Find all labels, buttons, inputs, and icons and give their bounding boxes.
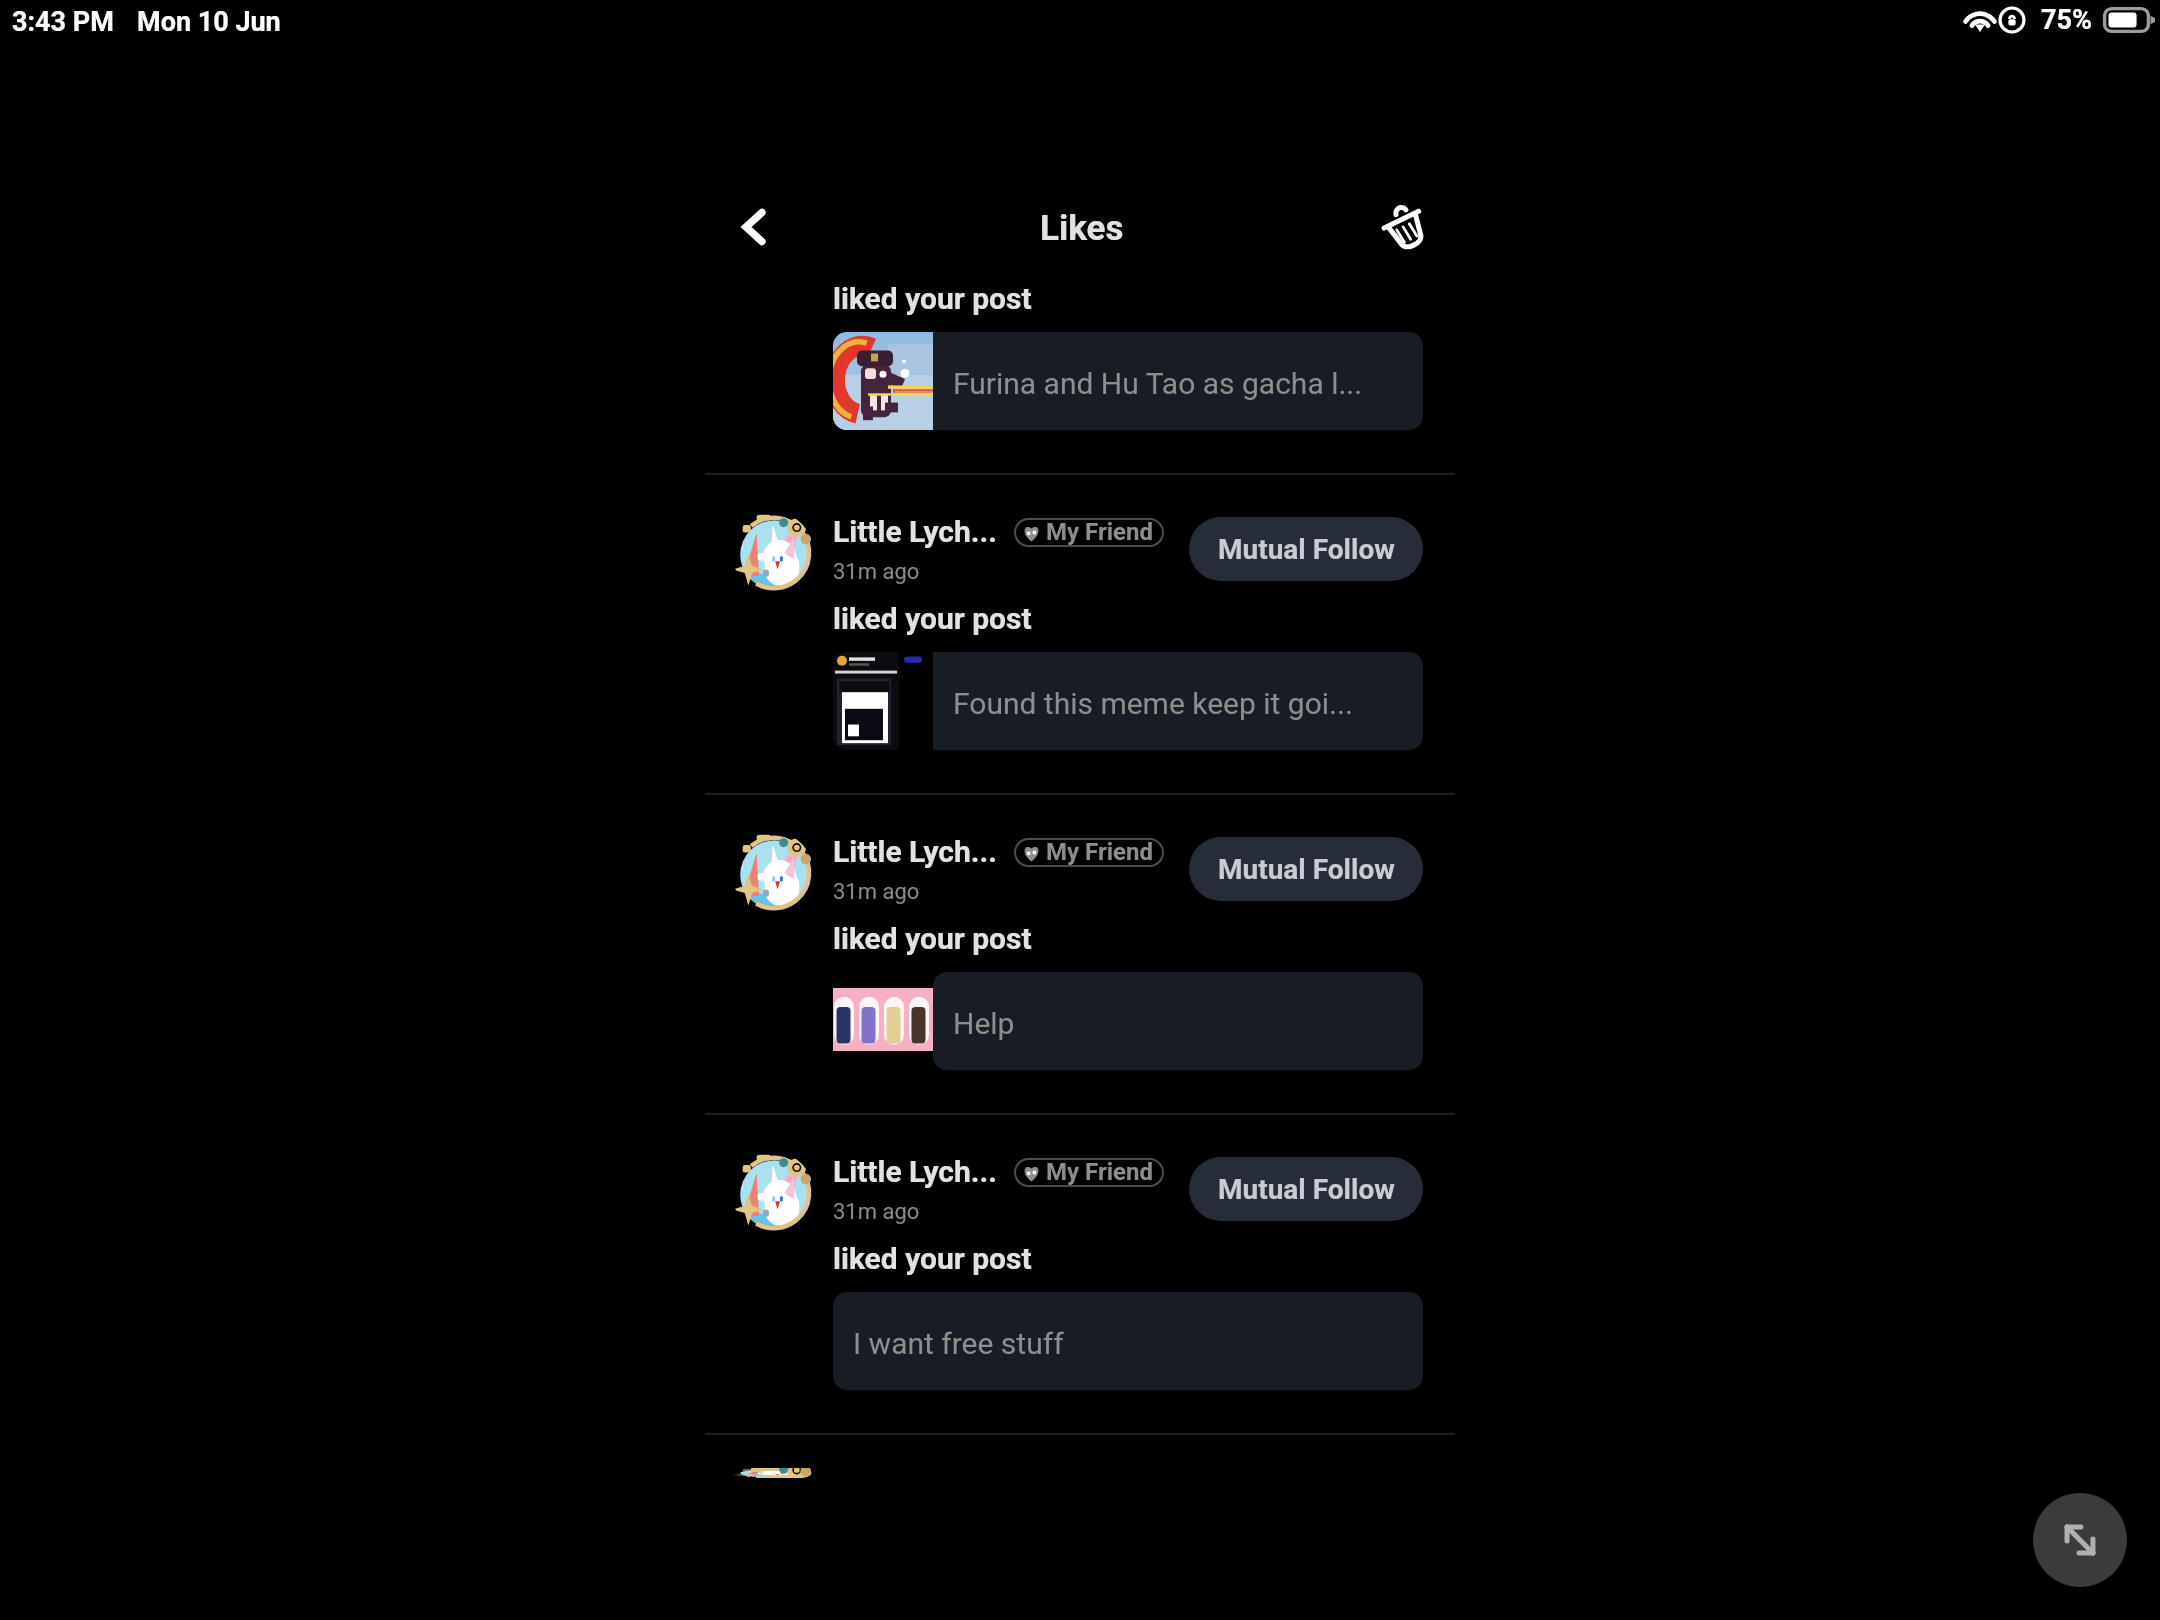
staticText: Mutual Follow: [1218, 533, 1395, 566]
staticText: Little Lych...: [833, 514, 997, 549]
staticText: Likes: [1040, 208, 1124, 249]
button[interactable]: [705, 1115, 1455, 1433]
staticText: liked your post: [833, 281, 1032, 316]
staticText: 31m ago: [833, 879, 920, 905]
button[interactable]: Mutual Follow: [1189, 837, 1423, 901]
button[interactable]: My Friend: [1022, 518, 1153, 547]
staticText: My Friend: [1046, 838, 1153, 866]
button[interactable]: Mutual Follow: [1189, 517, 1423, 581]
button[interactable]: [833, 652, 1423, 750]
staticText: Little Lych...: [833, 834, 997, 869]
staticText: Mon 10 Jun: [137, 6, 281, 38]
staticText: liked your post: [833, 921, 1032, 956]
button[interactable]: Mutual Follow: [1189, 1157, 1423, 1221]
button[interactable]: Expand: [2033, 1493, 2127, 1587]
staticText: Mutual Follow: [1218, 853, 1395, 886]
staticText: 31m ago: [833, 559, 920, 585]
button[interactable]: [833, 332, 1423, 430]
staticText: liked your post: [833, 1241, 1032, 1276]
staticText: Help: [953, 1006, 1015, 1041]
staticText: 75%: [2041, 4, 2092, 36]
button[interactable]: [705, 795, 1455, 1113]
button[interactable]: Back: [724, 197, 784, 257]
button[interactable]: Clear all: [1375, 197, 1435, 257]
staticText: 31m ago: [833, 1199, 920, 1225]
staticText: Mutual Follow: [1218, 1173, 1395, 1206]
staticText: My Friend: [1046, 518, 1153, 546]
staticText: My Friend: [1046, 1158, 1153, 1186]
button[interactable]: [705, 475, 1455, 793]
staticText: liked your post: [833, 601, 1032, 636]
button[interactable]: [833, 1292, 1423, 1390]
staticText: Found this meme keep it goi...: [953, 686, 1353, 721]
staticText: Furina and Hu Tao as gacha l...: [953, 366, 1363, 401]
staticText: I want free stuff: [853, 1326, 1064, 1361]
staticText: 3:43 PM: [12, 6, 114, 38]
button[interactable]: My Friend: [1022, 838, 1153, 867]
staticText: Little Lych...: [833, 1154, 997, 1189]
button[interactable]: My Friend: [1022, 1158, 1153, 1187]
button[interactable]: [933, 972, 1423, 1070]
